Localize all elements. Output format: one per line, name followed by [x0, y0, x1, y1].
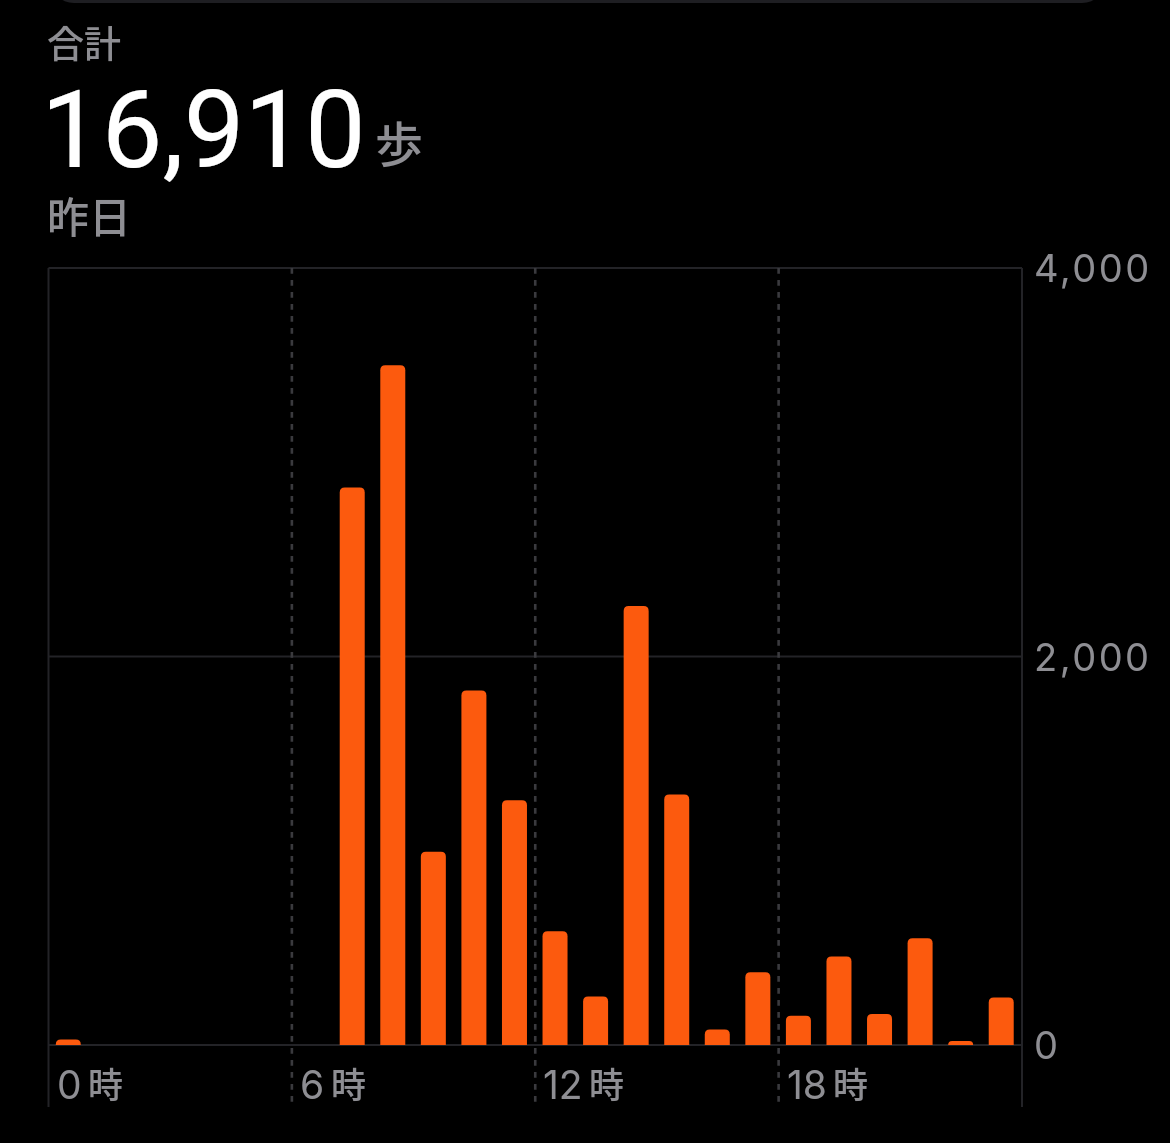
staticText: 16,910 — [41, 67, 366, 194]
staticText: 6 — [300, 1061, 325, 1108]
staticText: 昨日 — [47, 184, 132, 245]
staticText: 2,000 — [1034, 634, 1152, 680]
button[interactable]: Hourly step count chart — [0, 250, 1170, 1130]
staticText: 時 — [833, 1057, 869, 1108]
staticText: 時 — [331, 1057, 367, 1108]
staticText: 0 — [57, 1061, 82, 1108]
staticText: 12 — [543, 1061, 583, 1108]
staticText: 合計 — [47, 15, 121, 69]
button[interactable]: 合計 — [0, 0, 620, 250]
staticText: 時 — [589, 1057, 625, 1108]
staticText: 時 — [88, 1057, 124, 1108]
staticText: 歩 — [375, 106, 424, 176]
staticText: 4,000 — [1034, 245, 1152, 291]
staticText: 0 — [1034, 1022, 1061, 1068]
staticText: 18 — [787, 1061, 827, 1108]
